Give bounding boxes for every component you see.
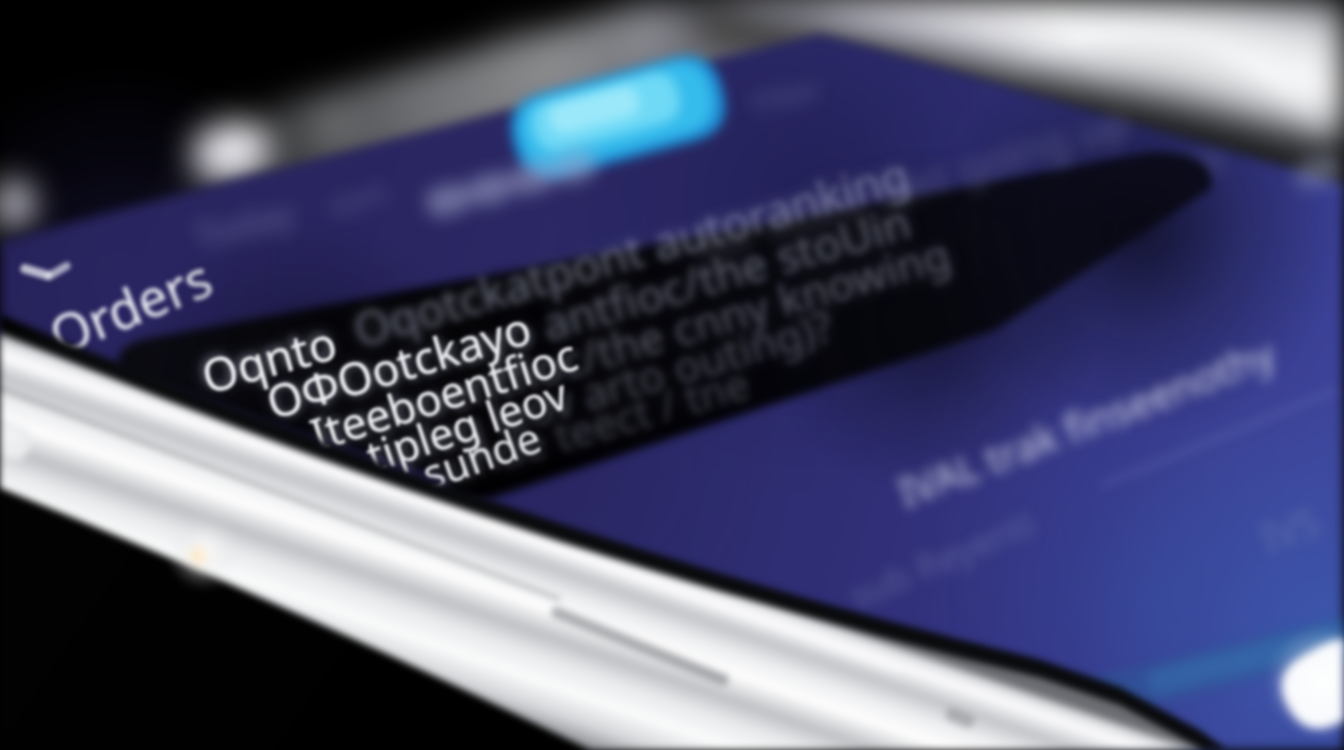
button[interactable] (0, 0, 1344, 750)
other: Orders screen (0, 0, 1344, 750)
